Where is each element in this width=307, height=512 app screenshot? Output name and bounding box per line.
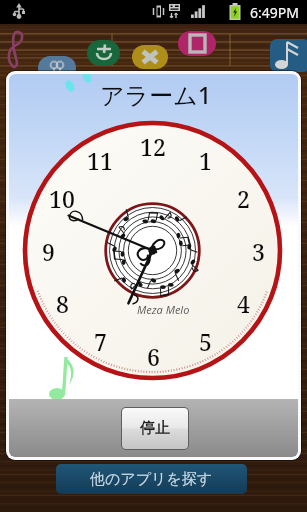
staticText: 9 xyxy=(42,236,55,266)
staticText: 11 xyxy=(87,145,113,175)
button[interactable]: Music app xyxy=(270,39,307,72)
staticText: 6:49PM xyxy=(250,3,299,22)
staticText: 2 xyxy=(237,183,250,213)
staticText: 7 xyxy=(94,326,107,356)
staticText: 10 xyxy=(49,183,75,213)
button[interactable]: App icon xyxy=(132,45,168,69)
button[interactable]: 停止 xyxy=(122,408,188,449)
button[interactable]: 他のアプリを探す xyxy=(56,464,247,494)
staticText: Meza Melo xyxy=(137,302,190,317)
staticText: 12 xyxy=(140,131,166,161)
staticText: 4 xyxy=(237,288,250,318)
staticText: 1 xyxy=(199,145,212,175)
button[interactable]: App icon xyxy=(38,56,76,80)
staticText: 停止 xyxy=(140,419,170,438)
staticText: 5 xyxy=(199,326,212,356)
staticText: 6 xyxy=(147,341,160,371)
staticText: 他のアプリを探す xyxy=(90,470,213,489)
button[interactable]: App icon xyxy=(87,40,120,66)
staticText: アラーム1 xyxy=(100,78,212,111)
staticText: 8 xyxy=(56,288,69,318)
button[interactable]: App icon xyxy=(178,31,216,56)
staticText: 3 xyxy=(252,236,265,266)
